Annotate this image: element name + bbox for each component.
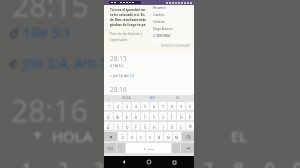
button[interactable]: 0 <box>186 112 194 120</box>
button[interactable]: 7 <box>159 112 167 120</box>
button[interactable]: Shift <box>104 132 117 141</box>
staticText: Z <box>122 135 124 140</box>
staticText: 6 <box>153 113 155 116</box>
staticText: 4 <box>135 113 137 116</box>
button[interactable]: 123 <box>104 143 116 153</box>
button[interactable]: ) <box>177 122 185 130</box>
button[interactable]: 5 <box>141 112 149 120</box>
button[interactable]: Resumen <box>153 4 191 11</box>
staticText: 3 <box>94 157 104 168</box>
staticText: N <box>167 135 170 140</box>
button[interactable]: Recents <box>169 157 179 167</box>
button[interactable]: 4 <box>132 102 140 110</box>
button[interactable]: 2 <box>114 112 122 120</box>
staticText: + <box>162 123 164 126</box>
button[interactable]: 8 <box>168 112 176 120</box>
staticText: 6 <box>153 104 155 109</box>
button[interactable]: Cuadros <box>153 11 191 18</box>
button[interactable]: 9 <box>177 102 185 110</box>
button[interactable]: 4. TABERNÁC <box>153 32 191 39</box>
staticText: e <box>110 74 113 78</box>
staticText: 3 <box>126 104 128 109</box>
button[interactable]: 4 <box>132 112 140 120</box>
staticText: 2 <box>117 104 119 109</box>
button[interactable]: ' <box>137 132 145 141</box>
staticText: e <box>10 53 17 72</box>
staticText: 1 <box>108 113 110 116</box>
button[interactable]: Crónicas <box>153 18 191 25</box>
button[interactable]: % <box>132 122 140 130</box>
staticText: Ñ <box>189 124 192 129</box>
staticText: , <box>121 146 122 151</box>
staticText: 1Re 5:1 <box>113 64 124 68</box>
button[interactable]: 7 <box>159 102 167 110</box>
button[interactable]: 3 <box>123 112 131 120</box>
staticText: H <box>153 125 156 130</box>
button[interactable]: NO <box>139 95 165 101</box>
button[interactable]: : <box>146 132 154 141</box>
button[interactable]: - <box>150 122 158 130</box>
staticText: NO <box>150 96 155 100</box>
staticText: L <box>180 125 182 130</box>
button[interactable]: + <box>159 122 167 130</box>
button[interactable]: 1 <box>104 102 113 110</box>
button[interactable]: 9 <box>177 112 185 120</box>
staticText: 1Re 5:1 <box>23 23 72 42</box>
staticText: F <box>135 125 137 130</box>
button[interactable]: 5 <box>141 102 149 110</box>
button[interactable]: ; <box>155 132 163 141</box>
staticText: B <box>158 135 161 140</box>
button[interactable]: ? <box>173 132 181 141</box>
staticText: W <box>116 115 120 120</box>
button[interactable]: 3 <box>123 102 131 110</box>
button[interactable]: HOLA <box>114 95 139 101</box>
button[interactable]: 8 <box>168 102 176 110</box>
button[interactable]: 0 <box>186 102 194 110</box>
button[interactable]: Enter <box>181 143 194 153</box>
button[interactable]: Back <box>119 157 129 167</box>
button[interactable]: * <box>118 132 127 141</box>
button[interactable]: Add word <box>104 95 114 101</box>
button[interactable]: ! <box>164 132 172 141</box>
staticText: & <box>144 123 146 126</box>
staticText: . <box>176 146 177 151</box>
button[interactable]: Space <box>126 143 171 153</box>
staticText: O <box>180 115 183 120</box>
staticText: " <box>132 133 133 136</box>
button[interactable]: Ñ <box>186 122 194 130</box>
staticText: Crónicas <box>153 20 165 24</box>
staticText: te he colocado a ti. En <box>110 13 145 17</box>
staticText: Joe 3:4, Am 1: <box>23 53 112 72</box>
button[interactable]: # <box>114 122 122 130</box>
button[interactable]: , <box>117 143 125 153</box>
staticText: 7 <box>203 157 213 168</box>
button[interactable]: Backspace <box>182 132 194 141</box>
staticText: ) <box>181 123 182 126</box>
staticText: 0 <box>189 113 191 116</box>
button[interactable]: " <box>128 132 136 141</box>
button[interactable]: ( <box>168 122 176 130</box>
staticText: Latino <box>147 147 154 150</box>
staticText: 2 <box>117 113 119 116</box>
staticText: D <box>126 125 129 130</box>
staticText: K <box>171 125 174 130</box>
button[interactable]: 6 <box>150 102 158 110</box>
button[interactable]: Diego Antonio <box>153 25 191 32</box>
staticText: 28:15 <box>12 0 89 26</box>
staticText: T <box>144 115 146 120</box>
button[interactable]: @ <box>104 122 113 130</box>
button[interactable]: EL <box>165 95 191 101</box>
button[interactable]: $ <box>123 122 131 130</box>
staticText: 1 <box>22 157 32 168</box>
staticText: : <box>150 133 151 136</box>
button[interactable]: 1 <box>104 112 113 120</box>
button[interactable]: Home <box>144 157 154 167</box>
button[interactable]: 2 <box>114 102 122 110</box>
button[interactable]: 6 <box>150 112 158 120</box>
staticText: Joe 3:4, Am 1:9 <box>113 74 134 78</box>
button[interactable]: & <box>141 122 149 130</box>
button[interactable]: VERSIÓN A COMPARAR <box>161 44 190 48</box>
staticText: 4 <box>135 104 137 109</box>
